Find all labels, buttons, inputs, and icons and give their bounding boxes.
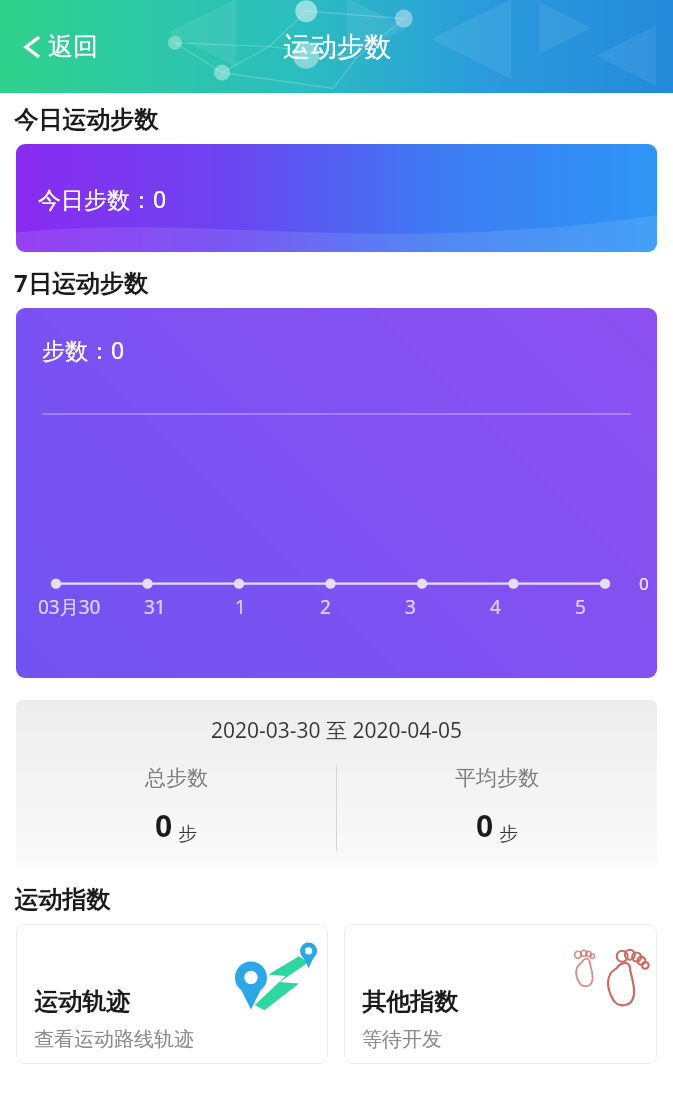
staticText: 运动指数 — [14, 885, 110, 915]
staticText: 0 — [476, 805, 494, 846]
button[interactable]: 步数：0 — [16, 308, 657, 678]
button[interactable]: 返回 — [16, 23, 104, 70]
staticText: 今日运动步数 — [14, 105, 158, 135]
staticText: 查看运动路线轨迹 — [34, 1027, 194, 1052]
staticText: 步 — [494, 820, 518, 846]
staticText: 7日运动步数 — [14, 266, 148, 299]
staticText: 其他指数 — [362, 987, 458, 1017]
other: 返回 — [22, 32, 42, 62]
staticText: 03月30 — [38, 594, 101, 620]
staticText: 3 — [405, 594, 416, 620]
button[interactable]: 其他指数 — [344, 924, 657, 1064]
button[interactable]: 运动轨迹 — [16, 924, 328, 1064]
button[interactable]: 2020-03-30 至 2020-04-05 — [16, 700, 657, 867]
staticText: 运动步数 — [283, 30, 391, 64]
staticText: 步数：0 — [42, 334, 125, 365]
staticText: 今日步数：0 — [38, 183, 167, 214]
staticText: 5 — [575, 594, 586, 620]
staticText: 2020-03-30 至 2020-04-05 — [16, 716, 657, 745]
staticText: 1 — [235, 594, 246, 620]
staticText: 运动轨迹 — [34, 987, 130, 1017]
staticText: 0 — [155, 805, 173, 846]
staticText: 等待开发 — [362, 1027, 442, 1052]
staticText: 0 — [639, 572, 649, 595]
staticText: 2 — [320, 594, 331, 620]
staticText: 步 — [173, 820, 197, 846]
staticText: 总步数 — [145, 765, 208, 791]
staticText: 返回 — [48, 31, 98, 62]
staticText: 平均步数 — [455, 765, 539, 791]
button[interactable]: 今日步数：0 — [16, 144, 657, 252]
staticText: 31 — [144, 594, 166, 620]
staticText: 4 — [490, 594, 501, 620]
